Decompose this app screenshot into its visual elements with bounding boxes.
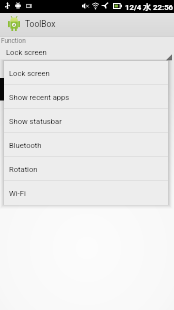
staticText: 12/4 水 22:56 bbox=[125, 2, 174, 12]
button[interactable]: Bluetooth bbox=[4, 133, 168, 157]
button[interactable]: Show recent apps bbox=[4, 85, 168, 109]
button[interactable]: Function selector bbox=[0, 44, 174, 60]
staticText: Rotation bbox=[9, 165, 38, 174]
staticText: ToolBox bbox=[25, 19, 56, 29]
staticText: Bluetooth bbox=[9, 141, 42, 150]
staticText: Show recent apps bbox=[9, 93, 70, 102]
staticText: Function bbox=[1, 37, 26, 45]
staticText: Show statusbar bbox=[9, 117, 62, 126]
button[interactable]: Wi-Fi bbox=[4, 181, 168, 205]
button[interactable]: Lock screen bbox=[4, 61, 168, 85]
staticText: Wi-Fi bbox=[9, 189, 26, 198]
staticText: Lock screen bbox=[9, 69, 50, 78]
button[interactable]: Show statusbar bbox=[4, 109, 168, 133]
button[interactable]: Rotation bbox=[4, 157, 168, 181]
staticText: Lock screen bbox=[6, 48, 47, 57]
